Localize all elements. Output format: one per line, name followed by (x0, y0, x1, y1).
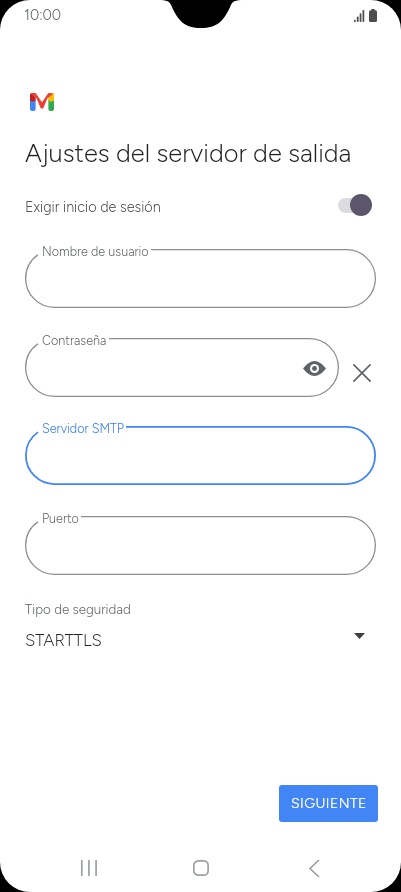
staticText: STARTTLS (25, 630, 102, 650)
staticText: 10:00 (24, 6, 62, 23)
button[interactable]: Nombre de usuario (25, 249, 376, 308)
staticText: Nombre de usuario (42, 244, 149, 259)
button[interactable]: Tipo de seguridad (25, 598, 376, 654)
staticText: Servidor SMTP (42, 421, 124, 436)
staticText: Ajustes del servidor de salida (25, 138, 352, 169)
button[interactable]: Atrás (290, 844, 338, 892)
button[interactable]: Borrar contraseña (349, 360, 375, 386)
staticText: Exigir inicio de sesión (25, 198, 161, 215)
button[interactable]: Inicio (177, 844, 225, 892)
staticText: Contraseña (42, 333, 107, 348)
button[interactable]: Exigir inicio de sesión (336, 193, 378, 219)
button[interactable]: SIGUIENTE (279, 785, 378, 822)
staticText: SIGUIENTE (291, 795, 367, 812)
button[interactable]: Contraseña (25, 338, 339, 397)
button[interactable]: Mostrar contraseña (301, 355, 327, 381)
staticText: Puerto (42, 511, 79, 526)
button[interactable]: Puerto (25, 516, 376, 575)
button[interactable]: Recientes (64, 844, 112, 892)
staticText: Tipo de seguridad (25, 601, 131, 617)
button[interactable]: Servidor SMTP (25, 426, 376, 485)
